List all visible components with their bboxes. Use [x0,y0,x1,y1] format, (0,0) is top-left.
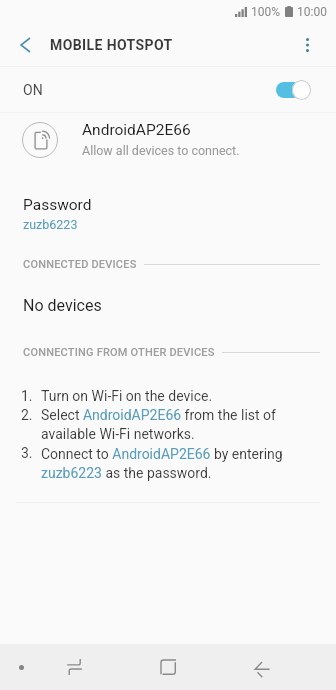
button[interactable]: More options [278,24,336,66]
staticText: MOBILE HOTSPOT [50,37,173,53]
staticText: 1. [21,388,33,404]
staticText: ON [23,82,43,98]
staticText: Password [23,196,92,214]
button[interactable]: ON [0,67,336,112]
staticText: No devices [23,296,102,315]
staticText: 10:00 [297,5,327,19]
staticText: zuzb6223 [23,217,78,232]
staticText: CONNECTED DEVICES [23,258,137,271]
staticText: CONNECTING FROM OTHER DEVICES [23,346,215,359]
button[interactable]: AndroidAP2E66 [0,113,336,171]
staticText: 3. [21,445,33,461]
button[interactable]: Recents [28,644,121,690]
staticText: Turn on Wi-Fi on the device. [41,388,213,404]
staticText: 2. [21,407,33,423]
button[interactable]: Back [215,644,309,690]
button[interactable]: Navigate up [0,24,50,66]
button[interactable]: Home [121,644,215,690]
staticText: AndroidAP2E66 [82,121,191,139]
staticText: Allow all devices to connect. [82,143,240,158]
button[interactable]: Show keyboard [5,651,37,683]
staticText: 100% [251,5,281,19]
button[interactable]: Password [0,171,336,258]
staticText: Select AndroidAP2E66 from the list of av… [41,407,312,443]
staticText: Connect to AndroidAP2E66 by entering zuz… [41,446,312,482]
